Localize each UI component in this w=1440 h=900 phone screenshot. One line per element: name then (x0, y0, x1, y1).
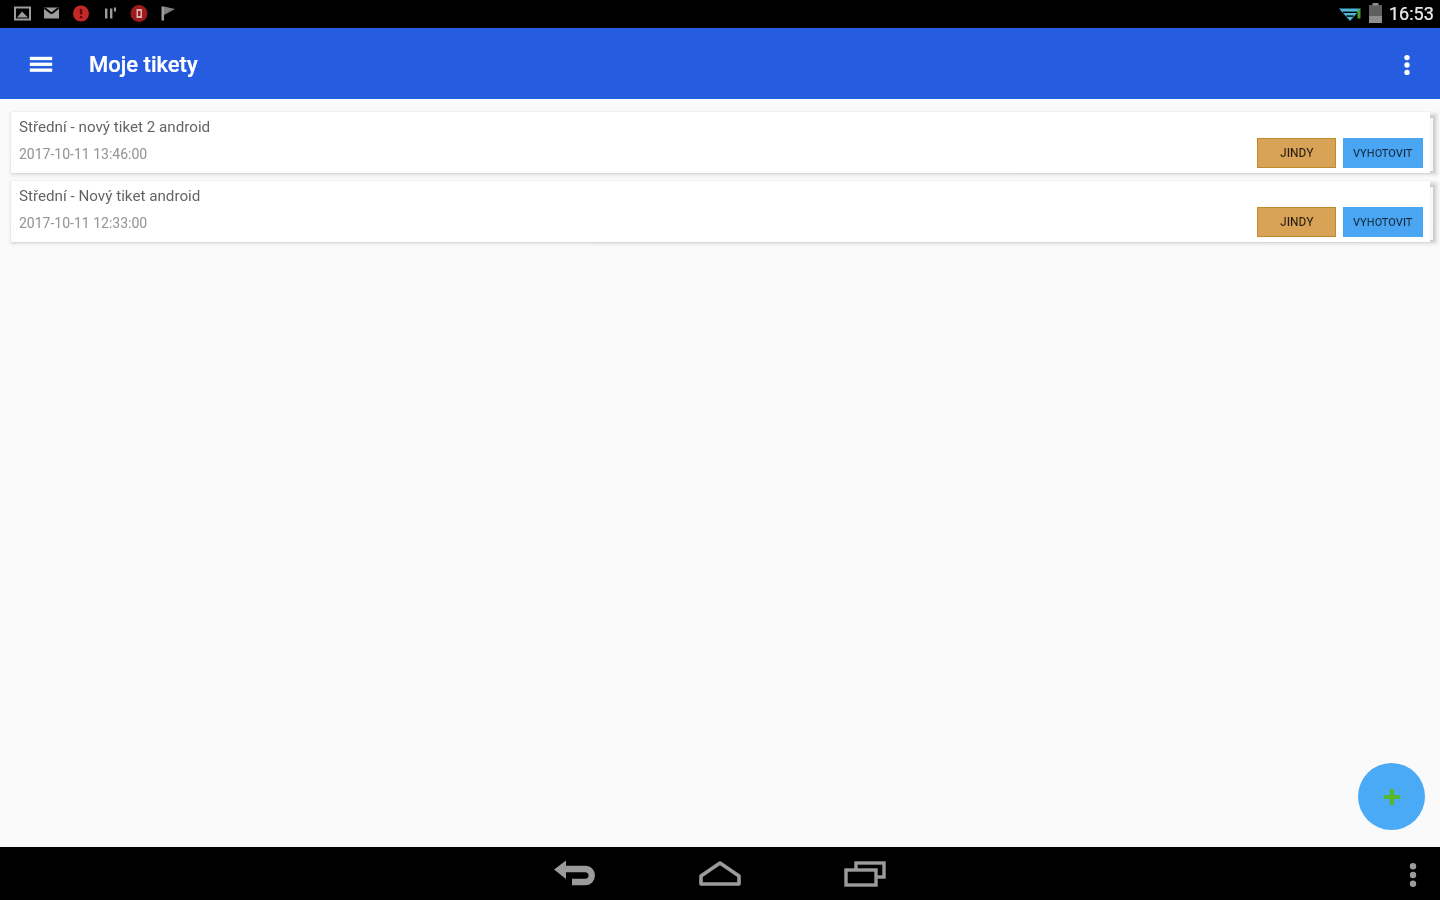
button[interactable]: Add new ticket (1358, 763, 1425, 830)
staticText: Střední - Nový tiket android (19, 187, 201, 205)
button[interactable]: Open navigation drawer (18, 41, 63, 86)
staticText: JINDY (1280, 215, 1314, 229)
staticText: 2017-10-11 13:46:00 (19, 146, 148, 162)
button[interactable]: More options (1384, 42, 1429, 87)
button[interactable]: VYHOTOVIT (1343, 207, 1423, 237)
button[interactable]: JINDY (1257, 138, 1336, 168)
staticText: Střední - nový tiket 2 android (19, 118, 211, 136)
button[interactable]: VYHOTOVIT (1343, 138, 1423, 168)
button[interactable]: Back (548, 853, 604, 895)
button[interactable]: JINDY (1257, 207, 1336, 237)
button[interactable]: More options (1390, 852, 1435, 897)
button[interactable]: Střední - nový tiket 2 android (11, 112, 1430, 173)
staticText: Moje tikety (89, 52, 198, 78)
button[interactable]: Recent apps (837, 853, 893, 895)
staticText: VYHOTOVIT (1353, 147, 1413, 160)
staticText: 2017-10-11 12:33:00 (19, 215, 148, 231)
staticText: JINDY (1280, 146, 1314, 160)
button[interactable]: Střední - Nový tiket android (11, 181, 1430, 242)
staticText: VYHOTOVIT (1353, 216, 1413, 229)
staticText: 16:53 (1389, 3, 1434, 24)
button[interactable]: Home (692, 853, 748, 895)
